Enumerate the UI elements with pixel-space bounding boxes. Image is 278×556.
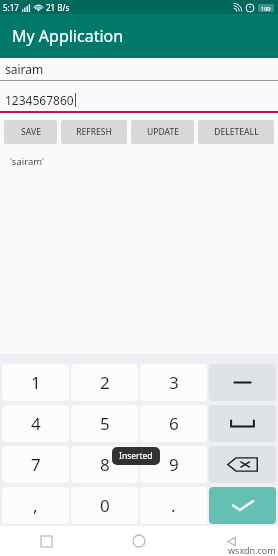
staticText: 8: [100, 453, 110, 476]
staticText: .: [171, 494, 176, 517]
button[interactable]: 7: [2, 446, 69, 483]
button[interactable]: Recents: [0, 526, 92, 556]
button[interactable]: 4: [2, 405, 69, 442]
button[interactable]: 2: [71, 364, 138, 401]
button[interactable]: 8: [71, 446, 138, 483]
staticText: 6: [169, 412, 179, 435]
staticText: 5:17: [3, 2, 19, 13]
button[interactable]: sairam: [0, 58, 278, 81]
button[interactable]: Back: [185, 526, 278, 556]
staticText: 9: [169, 453, 179, 476]
button[interactable]: Space: [209, 405, 276, 442]
staticText: 'sairam': [10, 155, 45, 168]
staticText: sairam: [5, 61, 44, 77]
staticText: Inserted: [119, 450, 153, 462]
button[interactable]: 1234567860: [0, 89, 278, 113]
staticText: 0: [100, 494, 110, 517]
button[interactable]: UPDATE: [131, 120, 194, 144]
staticText: 4: [31, 412, 41, 435]
staticText: 7: [31, 453, 41, 476]
button[interactable]: 6: [140, 405, 207, 442]
button[interactable]: ,: [2, 487, 69, 524]
staticText: UPDATE: [147, 126, 179, 138]
button[interactable]: DELETEALL: [198, 120, 274, 144]
staticText: 2: [100, 371, 110, 394]
staticText: DELETEALL: [214, 126, 259, 138]
staticText: 100: [261, 5, 271, 12]
button[interactable]: SAVE: [4, 120, 57, 144]
button[interactable]: .: [140, 487, 207, 524]
staticText: 1234567860: [5, 92, 74, 108]
staticText: 21 B/s: [46, 2, 70, 13]
button[interactable]: Enter: [209, 487, 276, 524]
staticText: REFRESH: [76, 126, 112, 138]
staticText: ,: [33, 494, 38, 517]
button[interactable]: 0: [71, 487, 138, 524]
staticText: wsxdn.com: [228, 544, 276, 556]
staticText: 1: [31, 371, 41, 394]
staticText: My Application: [12, 25, 124, 47]
button[interactable]: Minus: [209, 364, 276, 401]
button[interactable]: Backspace: [209, 446, 276, 483]
button[interactable]: 3: [140, 364, 207, 401]
button[interactable]: Home: [92, 526, 185, 556]
button[interactable]: REFRESH: [61, 120, 127, 144]
staticText: 5: [100, 412, 110, 435]
staticText: 3: [169, 371, 179, 394]
button[interactable]: 1: [2, 364, 69, 401]
staticText: SAVE: [21, 126, 41, 138]
button[interactable]: 9: [140, 446, 207, 483]
button[interactable]: 5: [71, 405, 138, 442]
